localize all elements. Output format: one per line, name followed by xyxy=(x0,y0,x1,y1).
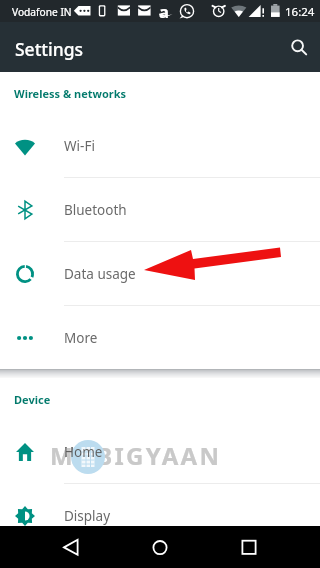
staticText: MOBIGYAAN xyxy=(50,439,222,472)
staticText: Settings xyxy=(15,37,84,61)
button[interactable]: Display xyxy=(0,484,320,547)
staticText: 16:24 xyxy=(285,4,315,20)
staticText: Home xyxy=(64,443,103,461)
button[interactable]: More xyxy=(0,306,320,369)
staticText: Home xyxy=(64,443,103,461)
staticText: Device xyxy=(14,392,51,407)
button[interactable]: Recents xyxy=(225,526,273,568)
staticText: Display xyxy=(64,507,111,525)
staticText: More xyxy=(64,329,98,347)
button[interactable]: Back xyxy=(47,526,95,568)
button[interactable]: Wi-Fi xyxy=(0,114,320,177)
staticText: Wi-Fi xyxy=(64,137,95,155)
staticText: Bluetooth xyxy=(64,201,127,219)
button[interactable]: Data usage xyxy=(0,242,320,305)
staticText: Data usage xyxy=(64,265,136,283)
button[interactable]: Search xyxy=(278,25,320,69)
button[interactable]: Home xyxy=(0,420,320,483)
staticText: Wireless & networks xyxy=(14,86,127,101)
button[interactable]: Bluetooth xyxy=(0,178,320,241)
staticText: Vodafone IN xyxy=(12,5,72,19)
button[interactable]: Home xyxy=(136,526,184,568)
staticText: a xyxy=(159,0,169,22)
